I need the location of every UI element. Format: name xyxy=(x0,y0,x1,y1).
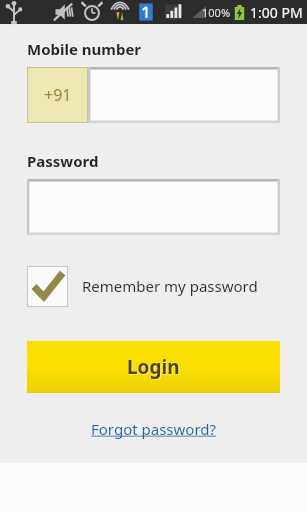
button[interactable]: Remember my password xyxy=(27,265,258,307)
staticText: Password xyxy=(27,151,99,171)
staticText: Forgot password? xyxy=(91,419,217,439)
staticText: 1:00 PM xyxy=(250,3,303,22)
button[interactable]: Login xyxy=(27,341,280,393)
staticText: Remember my password xyxy=(82,276,258,296)
staticText: 100% xyxy=(202,5,231,20)
staticText: +91 xyxy=(44,84,72,106)
staticText: Mobile number xyxy=(27,39,142,59)
staticText: Login xyxy=(127,354,180,380)
button[interactable]: Password input xyxy=(27,179,280,235)
staticText: Login xyxy=(128,355,181,381)
button[interactable]: Country code +91 xyxy=(27,67,88,123)
button[interactable]: Mobile number input xyxy=(88,67,280,123)
button[interactable]: Forgot password? xyxy=(85,413,223,445)
